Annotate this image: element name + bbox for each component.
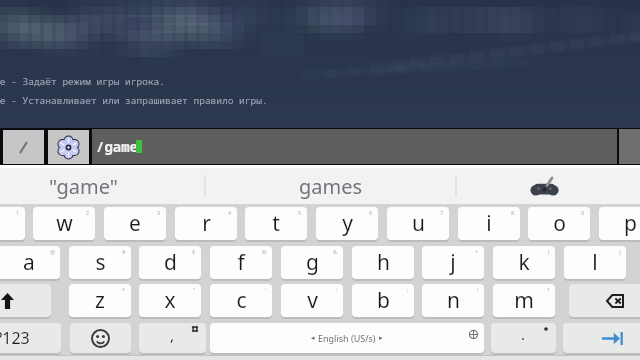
button[interactable]: b [352, 284, 414, 317]
staticText: ! [477, 286, 479, 293]
button[interactable]: g [281, 246, 343, 279]
button[interactable]: v [281, 284, 343, 317]
button[interactable]: h [352, 246, 414, 279]
staticText: games [299, 173, 363, 200]
button[interactable]: m [493, 284, 555, 317]
button[interactable]: n [422, 284, 484, 317]
staticText: @ [50, 248, 55, 255]
button[interactable]: f [210, 246, 272, 279]
button[interactable]: z [69, 284, 131, 317]
staticText: ◂ [311, 334, 315, 342]
staticText: + [475, 248, 479, 255]
staticText: a [23, 248, 35, 277]
button[interactable]: o [528, 207, 590, 240]
staticText: l [592, 248, 598, 277]
staticText: n [447, 286, 460, 315]
staticText: m [514, 286, 534, 315]
staticText: p [624, 209, 637, 238]
button[interactable]: /game [92, 129, 617, 164]
staticText: ▸ [379, 334, 383, 342]
staticText: 7 [440, 209, 444, 216]
staticText: 1 [16, 209, 20, 216]
button[interactable]: Insert slash [3, 130, 44, 164]
staticText: t [272, 209, 280, 238]
button[interactable]: i [458, 207, 520, 240]
button[interactable]: s [69, 246, 131, 279]
staticText: English (US/s) [318, 332, 376, 344]
staticText: z [95, 286, 105, 315]
button[interactable]: Comma [139, 323, 206, 353]
staticText: * [122, 286, 126, 293]
button[interactable]: Backspace [569, 284, 640, 317]
button[interactable]: Space [210, 323, 484, 353]
staticText: le - Устанавливает или запрашивает прави… [0, 94, 268, 107]
staticText: f [237, 248, 245, 277]
button[interactable]: Shift [0, 284, 51, 317]
button[interactable]: c [210, 284, 272, 317]
button[interactable]: Emoji [70, 323, 131, 353]
button[interactable]: Gamepad emoji suggestion [456, 168, 640, 204]
staticText: x [164, 286, 176, 315]
staticText: . [521, 324, 526, 344]
staticText: 2 [86, 209, 90, 216]
staticText: e [129, 209, 141, 238]
button[interactable]: Enter [563, 323, 640, 353]
staticText: ; [407, 286, 409, 293]
button[interactable]: r [175, 207, 237, 240]
staticText: i [486, 209, 492, 238]
staticText: " [193, 286, 196, 293]
staticText: de - Задаёт режим игры игрока. [0, 75, 166, 88]
staticText: ' [265, 286, 267, 293]
staticText: : [336, 286, 338, 293]
button[interactable]: "game" [0, 168, 205, 204]
staticText: j [450, 248, 456, 277]
staticText: 5 [298, 209, 302, 216]
staticText: 8 [511, 209, 515, 216]
button[interactable]: t [245, 207, 307, 240]
button[interactable]: ?123 [0, 323, 61, 353]
staticText: b [377, 286, 390, 315]
button[interactable]: k [493, 246, 555, 279]
button[interactable]: p [599, 207, 640, 240]
button[interactable]: x [139, 284, 201, 317]
button[interactable]: Command list [48, 130, 89, 164]
staticText: 4 [228, 209, 232, 216]
button[interactable]: j [422, 246, 484, 279]
staticText: $ [192, 248, 196, 255]
staticText: /game [96, 137, 138, 156]
button[interactable]: l [564, 246, 626, 279]
staticText: s [95, 248, 106, 277]
staticText: w [56, 209, 73, 238]
staticText: h [377, 248, 390, 277]
staticText: u [412, 209, 425, 238]
staticText: ( [548, 248, 550, 255]
button[interactable]: u [387, 207, 449, 240]
staticText: 9 [581, 209, 585, 216]
staticText: c [236, 286, 247, 315]
button[interactable]: d [139, 246, 201, 279]
button[interactable]: Period [491, 323, 556, 353]
staticText: , [170, 325, 175, 345]
staticText: v [307, 286, 318, 315]
staticText: - [407, 248, 409, 255]
button[interactable]: w [33, 207, 95, 240]
staticText: # [122, 248, 126, 255]
staticText: "game" [49, 173, 119, 200]
staticText: % [262, 248, 267, 255]
staticText: ? [547, 286, 550, 293]
button[interactable]: y [316, 207, 378, 240]
staticText: ) [619, 248, 621, 255]
staticText: o [553, 209, 566, 238]
button[interactable]: e [104, 207, 166, 240]
staticText: d [164, 248, 177, 277]
staticText: r [202, 209, 211, 238]
staticText: & [333, 248, 338, 255]
button[interactable]: games [205, 168, 456, 204]
button[interactable]: a [0, 246, 60, 279]
staticText: 3 [157, 209, 161, 216]
button[interactable]: q [0, 207, 25, 240]
staticText: 6 [369, 209, 373, 216]
staticText: y [342, 209, 353, 238]
staticText: g [306, 248, 319, 277]
